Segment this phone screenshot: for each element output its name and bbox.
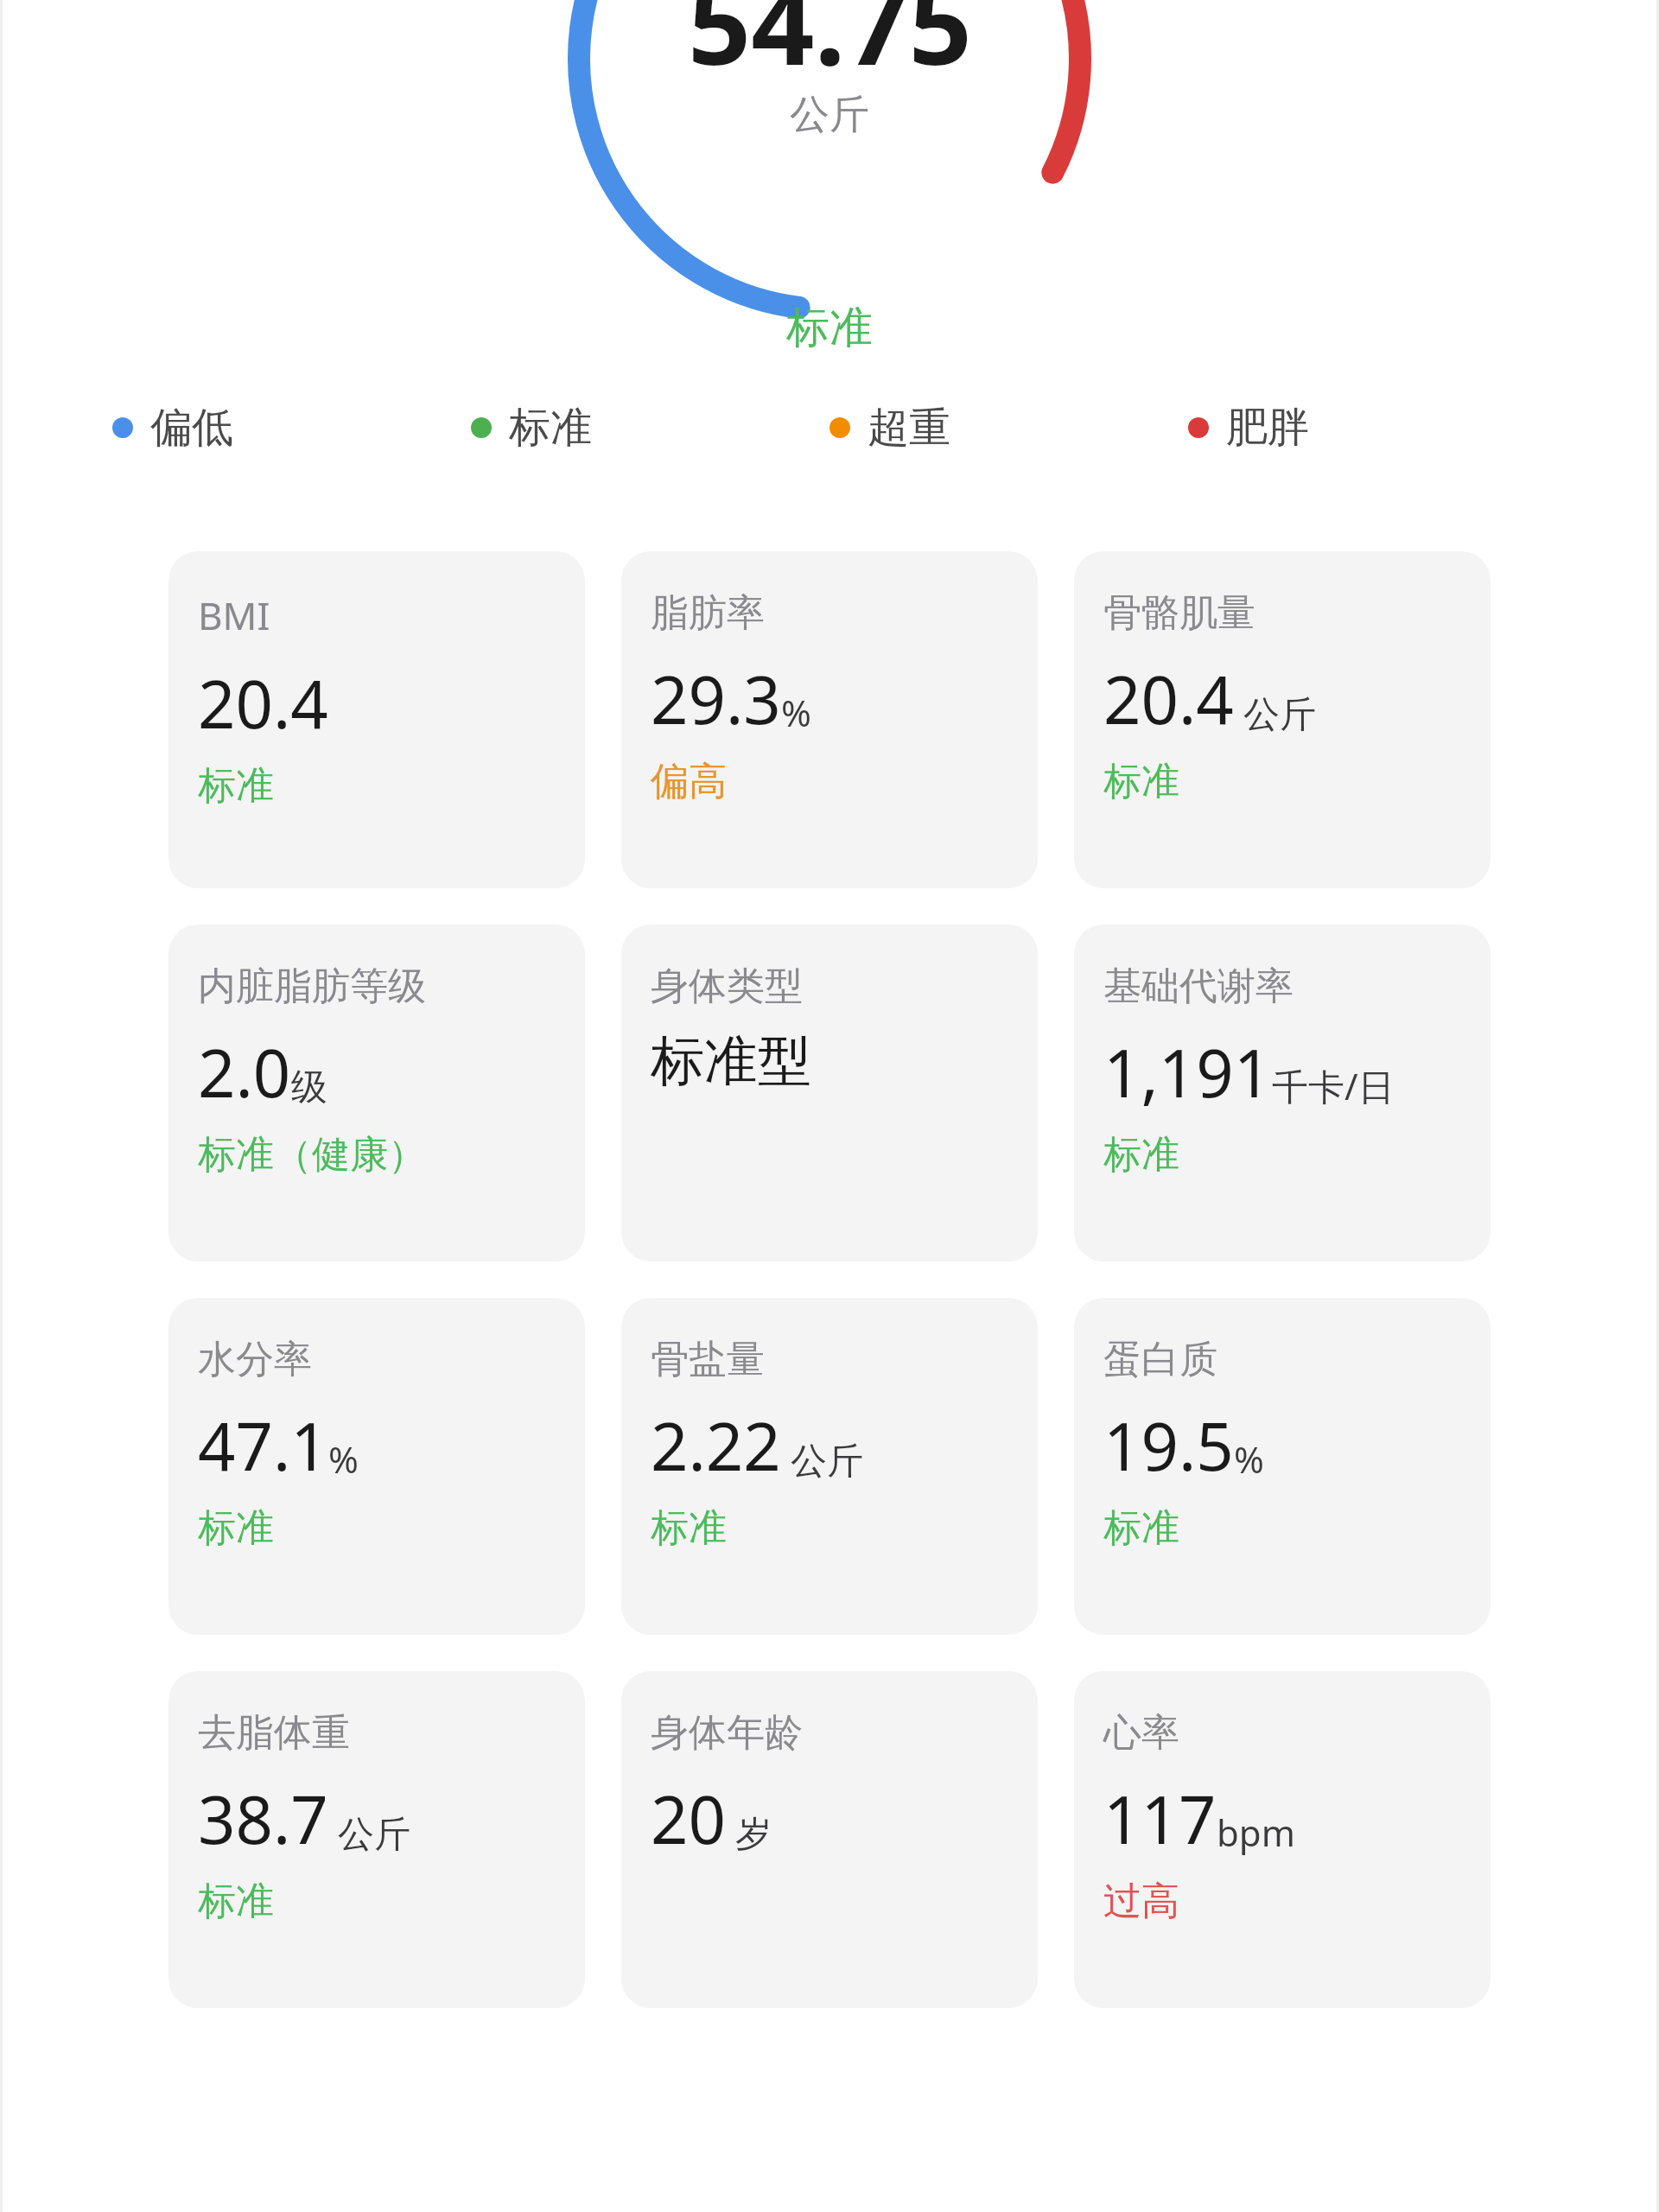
staticText: 47.1 bbox=[198, 1401, 328, 1491]
staticText: % bbox=[328, 1434, 359, 1484]
staticText: 标准 bbox=[1103, 1504, 1179, 1552]
staticText: 过高 bbox=[1103, 1878, 1179, 1925]
staticText: 基础代谢率 bbox=[1103, 963, 1294, 1010]
staticText: 2.22 bbox=[651, 1401, 781, 1491]
staticText: 标准 bbox=[198, 1878, 274, 1925]
staticText: 偏低 bbox=[150, 402, 233, 454]
staticText: 2.0 bbox=[198, 1027, 291, 1117]
button[interactable]: 标准 bbox=[471, 402, 829, 454]
staticText: 千卡/日 bbox=[1272, 1061, 1395, 1110]
staticText: 脂肪率 bbox=[651, 589, 765, 637]
staticText: % bbox=[781, 688, 811, 737]
button[interactable]: 基础代谢率 bbox=[1074, 925, 1491, 1262]
staticText: 1,191 bbox=[1103, 1027, 1272, 1117]
staticText: 岁 bbox=[726, 1808, 772, 1857]
staticText: BMI bbox=[198, 589, 270, 641]
staticText: 骨盐量 bbox=[651, 1336, 765, 1383]
staticText: 标准 bbox=[509, 402, 592, 454]
button[interactable]: 内脏脂肪等级 bbox=[168, 925, 585, 1262]
staticText: 标准（健康） bbox=[198, 1131, 426, 1179]
button[interactable]: 骨骼肌量 bbox=[1074, 551, 1491, 888]
staticText: 标准 bbox=[198, 1504, 274, 1552]
staticText: 心率 bbox=[1103, 1709, 1179, 1757]
staticText: 标准 bbox=[1103, 758, 1179, 805]
staticText: 级 bbox=[291, 1065, 327, 1110]
staticText: 公斤 bbox=[1234, 688, 1316, 737]
staticText: 20.4 bbox=[198, 658, 328, 748]
staticText: 去脂体重 bbox=[198, 1709, 350, 1757]
button[interactable]: 偏低 bbox=[112, 402, 471, 454]
staticText: 117 bbox=[1103, 1774, 1217, 1864]
staticText: 内脏脂肪等级 bbox=[198, 963, 426, 1010]
staticText: 20 bbox=[651, 1774, 726, 1864]
staticText: 公斤 bbox=[790, 90, 869, 140]
button[interactable]: 身体类型 bbox=[621, 925, 1038, 1262]
staticText: 身体年龄 bbox=[651, 1709, 803, 1757]
button[interactable]: 脂肪率 bbox=[621, 551, 1038, 888]
staticText: 公斤 bbox=[781, 1434, 863, 1484]
staticText: 水分率 bbox=[198, 1336, 312, 1383]
staticText: 20.4 bbox=[1103, 654, 1234, 744]
staticText: 54.75 bbox=[688, 0, 972, 97]
button[interactable]: 超重 bbox=[829, 402, 1188, 454]
staticText: 标准 bbox=[198, 762, 274, 810]
staticText: 公斤 bbox=[328, 1808, 410, 1857]
button[interactable]: 肥胖 bbox=[1188, 402, 1547, 454]
staticText: bpm bbox=[1217, 1808, 1295, 1857]
staticText: 蛋白质 bbox=[1103, 1336, 1217, 1383]
staticText: 肥胖 bbox=[1226, 402, 1309, 454]
button[interactable]: BMI bbox=[168, 551, 585, 888]
staticText: 偏高 bbox=[651, 758, 727, 805]
staticText: % bbox=[1234, 1434, 1264, 1484]
staticText: 19.5 bbox=[1103, 1401, 1234, 1491]
staticText: 38.7 bbox=[198, 1774, 328, 1864]
staticText: 骨骼肌量 bbox=[1103, 589, 1255, 637]
staticText: 29.3 bbox=[651, 654, 781, 744]
button[interactable]: 心率 bbox=[1074, 1671, 1491, 2008]
button[interactable]: 身体年龄 bbox=[621, 1671, 1038, 2008]
staticText: 标准 bbox=[786, 301, 873, 355]
button[interactable]: 去脂体重 bbox=[168, 1671, 585, 2008]
staticText: 标准型 bbox=[651, 1027, 811, 1095]
staticText: 超重 bbox=[868, 402, 950, 454]
staticText: 标准 bbox=[651, 1504, 727, 1552]
button[interactable]: 水分率 bbox=[168, 1298, 585, 1635]
staticText: 身体类型 bbox=[651, 963, 803, 1010]
button[interactable]: 蛋白质 bbox=[1074, 1298, 1491, 1635]
button[interactable]: 骨盐量 bbox=[621, 1298, 1038, 1635]
staticText: 标准 bbox=[1103, 1131, 1179, 1179]
